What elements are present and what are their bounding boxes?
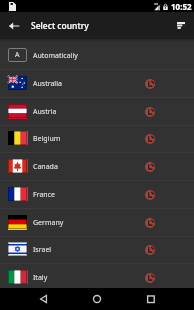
staticText: Israel	[33, 245, 145, 255]
button[interactable]: Italy	[0, 264, 194, 291]
button[interactable]: Recents	[140, 288, 162, 310]
staticText: France	[33, 190, 145, 200]
staticText: Canada	[33, 162, 145, 172]
button[interactable]: Israel	[0, 237, 194, 263]
staticText: 10:52	[171, 1, 192, 12]
button[interactable]: France	[0, 181, 194, 208]
button[interactable]: A	[0, 42, 194, 69]
staticText: Austria	[33, 107, 145, 117]
button[interactable]: Canada	[0, 153, 194, 180]
staticText: A	[15, 50, 20, 60]
staticText: Automatically	[33, 51, 78, 61]
staticText: Belgium	[33, 134, 145, 144]
button[interactable]: Belgium	[0, 126, 194, 152]
button[interactable]: Home	[86, 288, 108, 310]
button[interactable]: Navigate up	[2, 14, 26, 38]
staticText: Italy	[33, 273, 145, 283]
button[interactable]: Back	[32, 288, 54, 310]
staticText: Select country	[31, 20, 89, 32]
button[interactable]: Sort	[170, 14, 192, 36]
button[interactable]: Australia	[0, 70, 194, 97]
button[interactable]: Germany	[0, 209, 194, 236]
button[interactable]: Austria	[0, 98, 194, 125]
staticText: Germany	[33, 218, 145, 228]
staticText: Australia	[33, 79, 145, 89]
